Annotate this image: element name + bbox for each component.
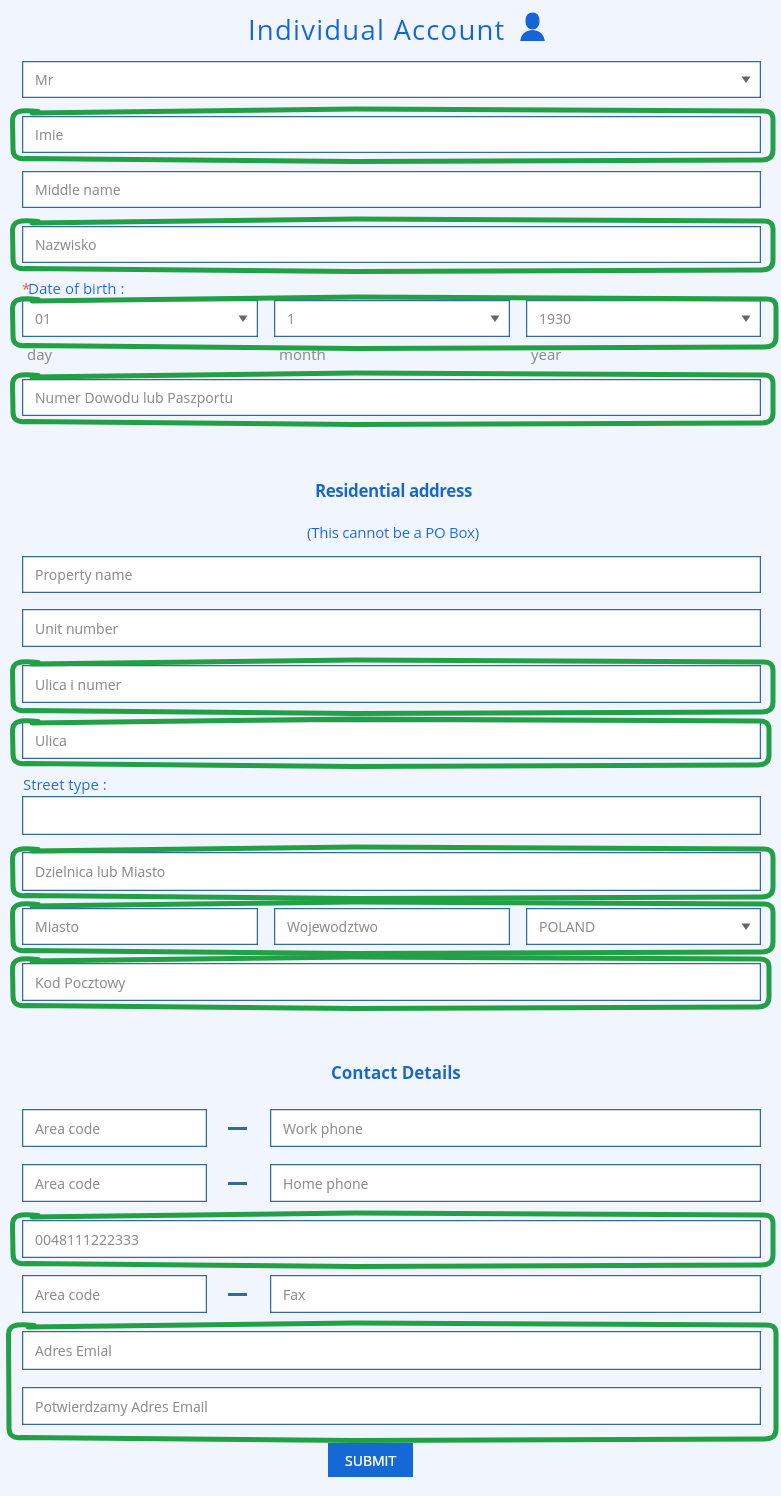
staticText: Contact Details [331,1061,461,1084]
button[interactable]: Ulica i numer [22,665,761,703]
staticText: Adres Emial [35,1341,112,1360]
staticText: SUBMIT [345,1451,397,1470]
staticText: Potwierdzamy Adres Email [35,1397,208,1416]
staticText: Ulica [35,731,67,750]
staticText: Kod Pocztowy [35,973,126,992]
staticText: Fax [283,1285,306,1304]
button[interactable]: Kod Pocztowy [22,963,761,1001]
staticText: Date of birth : [28,278,125,298]
button[interactable]: Wojewodztwo [274,908,510,945]
button[interactable]: Nazwisko [22,226,761,263]
staticText: Nazwisko [35,235,97,254]
button[interactable]: 0048111222333 [22,1220,761,1258]
staticText: month [279,344,326,364]
staticText: year [531,344,562,364]
staticText: Area code [35,1119,101,1138]
staticText: Ulica i numer [35,675,122,694]
staticText: day [27,344,53,364]
button[interactable]: Numer Dowodu lub Paszportu [22,379,761,416]
staticText: Residential address [315,479,472,502]
button[interactable]: Work phone [270,1109,761,1147]
staticText: Mr [35,70,54,89]
staticText: Unit number [35,619,119,638]
staticText: * [22,278,31,298]
button[interactable]: 1 [274,300,510,337]
button[interactable]: Adres Emial [22,1331,761,1370]
button[interactable]: Home phone [270,1164,761,1202]
staticText: Home phone [283,1174,369,1193]
button[interactable]: Dzielnica lub Miasto [22,852,761,891]
staticText: Numer Dowodu lub Paszportu [35,388,233,407]
button[interactable]: Account [517,12,548,41]
staticText: POLAND [539,917,596,936]
button[interactable]: POLAND [526,908,761,945]
staticText: 1 [287,309,296,328]
button[interactable]: Unit number [22,609,761,647]
staticText: Miasto [35,917,80,936]
button[interactable]: Imie [22,116,761,153]
button[interactable]: Area code [22,1275,207,1313]
button[interactable]: Property name [22,556,761,593]
staticText: Property name [35,565,133,584]
button[interactable]: Mr [22,61,761,98]
button[interactable]: Area code [22,1109,207,1147]
button[interactable]: Fax [270,1275,761,1313]
button[interactable]: Area code [22,1164,207,1202]
staticText: Work phone [283,1119,363,1138]
staticText: Wojewodztwo [287,917,379,936]
button[interactable]: 1930 [526,300,761,337]
staticText: 0048111222333 [35,1230,140,1249]
button[interactable]: SUBMIT [328,1443,413,1477]
button[interactable] [22,796,761,835]
button[interactable]: Potwierdzamy Adres Email [22,1387,761,1425]
button[interactable]: Ulica [22,721,761,759]
staticText: (This cannot be a PO Box) [307,522,479,542]
staticText: Imie [35,125,64,144]
staticText: Area code [35,1285,101,1304]
staticText: Street type : [23,774,107,794]
staticText: Area code [35,1174,101,1193]
button[interactable]: 01 [22,300,258,337]
staticText: Middle name [35,180,121,199]
staticText: Individual Account [248,11,506,48]
staticText: 01 [35,309,52,328]
staticText: 1930 [539,309,572,328]
button[interactable]: Middle name [22,171,761,208]
staticText: Dzielnica lub Miasto [35,862,166,881]
button[interactable]: Miasto [22,908,258,945]
